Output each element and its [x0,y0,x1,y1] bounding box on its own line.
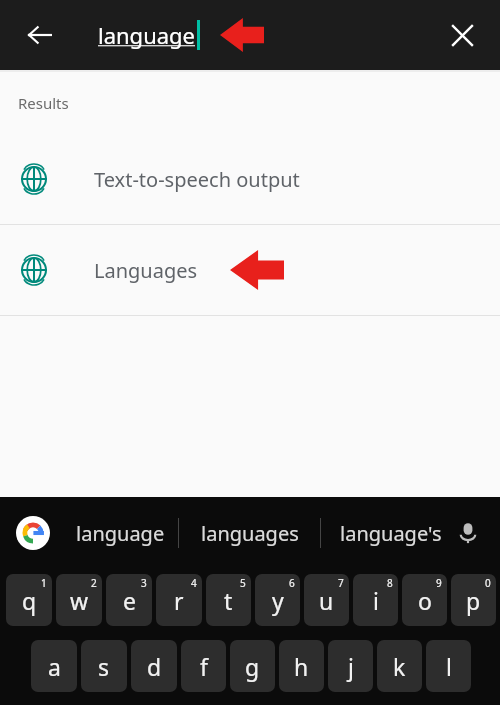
button[interactable]: j [328,640,373,692]
staticText: 7 [338,576,344,590]
button[interactable]: i [353,574,398,626]
button[interactable]: t [206,574,251,626]
staticText: 2 [91,576,97,590]
button[interactable]: d [131,640,177,692]
button[interactable]: e [106,574,152,626]
button[interactable]: g [230,640,275,692]
button[interactable]: Close [438,11,486,59]
button[interactable]: language [62,508,178,558]
button[interactable]: Google [16,516,50,550]
staticText: 1 [41,576,47,590]
staticText: languages [201,520,299,547]
staticText: 0 [485,576,491,590]
staticText: g [245,651,260,682]
button[interactable]: y [255,574,300,626]
button[interactable]: Back [16,11,64,59]
staticText: r [174,585,184,616]
staticText: u [319,585,334,616]
staticText: Languages [94,257,198,284]
staticText: a [48,651,61,682]
staticText: f [200,651,208,682]
button[interactable]: u [304,574,349,626]
button[interactable]: language [98,20,200,50]
staticText: language [76,520,165,547]
staticText: language [98,20,196,50]
staticText: 6 [289,576,295,590]
staticText: s [98,651,110,682]
staticText: 5 [240,576,246,590]
button[interactable]: s [81,640,127,692]
button[interactable]: k [377,640,422,692]
button[interactable]: h [279,640,324,692]
button[interactable]: l [426,640,471,692]
staticText: l [446,651,452,682]
staticText: y [272,585,284,616]
button[interactable]: f [181,640,226,692]
staticText: language's [340,520,442,547]
button[interactable]: q [6,574,52,626]
staticText: o [418,585,432,616]
staticText: e [123,585,136,616]
button[interactable]: Languages [0,225,500,315]
staticText: 4 [191,576,197,590]
button[interactable]: a [31,640,77,692]
staticText: 8 [387,576,393,590]
staticText: t [224,585,233,616]
staticText: 9 [436,576,442,590]
button[interactable]: languages [179,508,320,558]
staticText: j [348,651,354,682]
staticText: Text-to-speech output [94,166,300,193]
staticText: p [466,585,481,616]
staticText: q [22,585,37,616]
staticText: i [373,585,379,616]
staticText: w [70,585,89,616]
button[interactable]: p [451,574,496,626]
button[interactable]: Text-to-speech output [0,134,500,224]
staticText: h [294,651,309,682]
button[interactable]: language's [321,508,461,558]
staticText: Results [18,93,69,113]
button[interactable]: r [156,574,202,626]
staticText: 3 [141,576,147,590]
staticText: d [147,651,162,682]
button[interactable]: Voice input [446,511,490,555]
button[interactable]: w [56,574,102,626]
staticText: k [393,651,406,682]
button[interactable]: o [402,574,447,626]
